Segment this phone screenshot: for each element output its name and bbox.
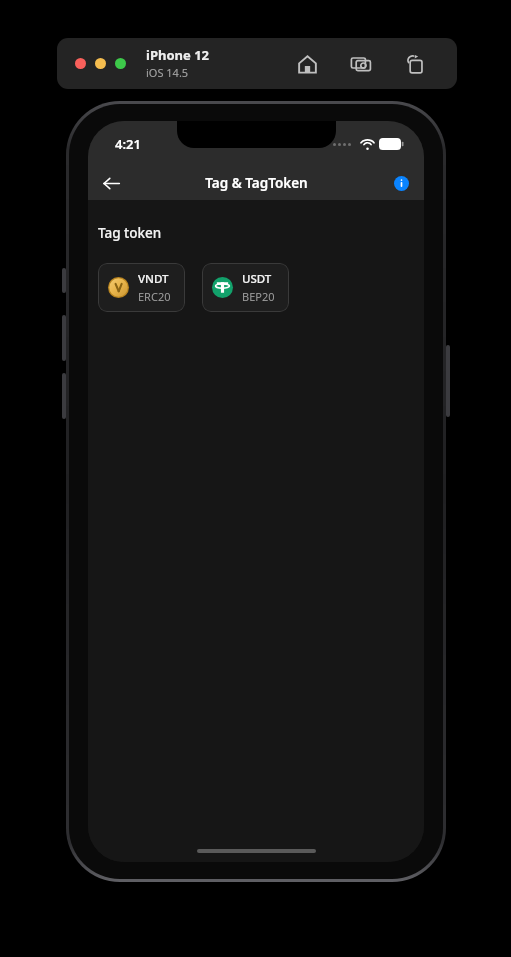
staticText: ERC20	[138, 289, 171, 304]
button[interactable]: USDT	[202, 263, 289, 312]
button[interactable]: Screenshot	[347, 50, 375, 78]
button[interactable]: Rotate	[401, 50, 429, 78]
button[interactable]: Back	[94, 166, 128, 200]
staticText: BEP20	[242, 289, 275, 304]
staticText: Tag & TagToken	[205, 174, 308, 192]
staticText: 4:21	[115, 135, 141, 153]
button[interactable]: Information	[386, 168, 416, 198]
staticText: USDT	[242, 271, 272, 287]
staticText: iOS 14.5	[146, 65, 189, 80]
button[interactable]: VNDT	[98, 263, 185, 312]
staticText: iPhone 12	[146, 46, 209, 64]
button[interactable]: Home	[293, 50, 321, 78]
staticText: VNDT	[138, 271, 169, 287]
staticText: Tag token	[98, 224, 162, 242]
